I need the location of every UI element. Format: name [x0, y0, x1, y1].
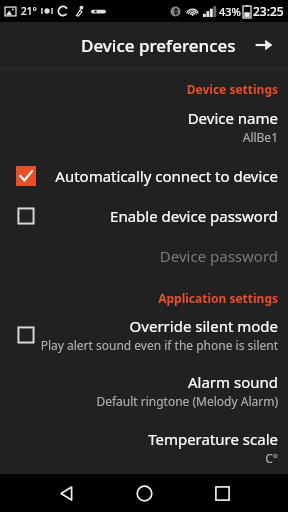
- button[interactable]: Automatically connect to device: [0, 158, 288, 194]
- button[interactable]: Forward: [250, 31, 278, 59]
- staticText: Automatically connect to device: [55, 166, 278, 186]
- staticText: Device settings: [186, 81, 278, 97]
- staticText: C°: [265, 450, 278, 466]
- button[interactable]: Home: [122, 474, 166, 512]
- button[interactable]: Temperature scale: [0, 424, 288, 471]
- staticText: 43%: [219, 4, 241, 19]
- staticText: Enable device password: [110, 206, 278, 226]
- button[interactable]: Device name: [0, 103, 288, 150]
- button[interactable]: Back: [44, 474, 88, 512]
- button[interactable]: Override silent mode: [0, 310, 288, 359]
- staticText: Device preferences: [81, 34, 236, 57]
- staticText: Alarm sound: [187, 372, 278, 392]
- button[interactable]: Device password: [0, 236, 288, 276]
- staticText: Play alert sound even if the phone is si…: [40, 337, 278, 353]
- staticText: Override silent mode: [129, 316, 278, 336]
- staticText: Device password: [159, 246, 278, 266]
- button[interactable]: Recent apps: [200, 474, 244, 512]
- staticText: Application settings: [158, 290, 278, 306]
- staticText: AllBe1: [242, 129, 278, 145]
- staticText: Device name: [187, 108, 278, 128]
- staticText: Default ringtone (Melody Alarm): [96, 393, 278, 409]
- button[interactable]: Alarm sound: [0, 367, 288, 414]
- staticText: 23:25: [253, 3, 284, 19]
- button[interactable]: Enable device password: [0, 198, 288, 234]
- staticText: 21°: [21, 4, 37, 18]
- staticText: Temperature scale: [148, 429, 278, 449]
